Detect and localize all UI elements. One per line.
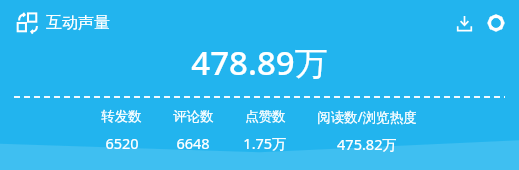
staticText: 6648 [176, 133, 210, 153]
staticText: 1.75万 [243, 133, 287, 153]
staticText: 转发数 [101, 108, 142, 125]
staticText: 互动声量 [46, 13, 110, 33]
button[interactable]: Download [449, 8, 479, 38]
button[interactable]: 点赞数 [229, 108, 301, 153]
staticText: 评论数 [173, 108, 214, 125]
staticText: 478.89万 [191, 40, 328, 85]
staticText: 阅读数/浏览热度 [317, 108, 417, 126]
button[interactable]: 阅读数/浏览热度 [301, 108, 433, 154]
button[interactable]: 互动声量 [12, 7, 114, 39]
staticText: 点赞数 [245, 108, 286, 125]
button[interactable]: 评论数 [157, 108, 229, 153]
button[interactable]: Settings [481, 8, 511, 38]
staticText: 475.82万 [337, 134, 397, 154]
button[interactable]: 转发数 [86, 108, 157, 153]
staticText: 6520 [105, 133, 139, 153]
